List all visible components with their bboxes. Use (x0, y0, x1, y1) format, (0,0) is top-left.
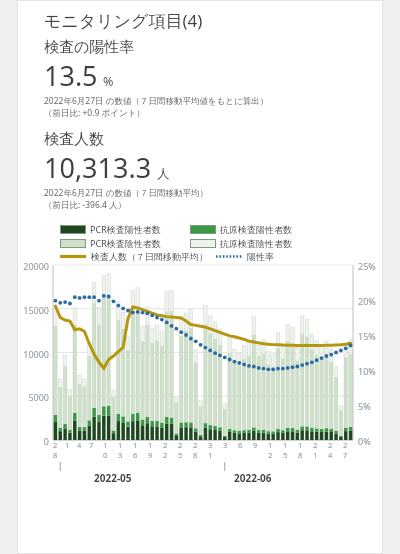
staticText: 16 (133, 440, 138, 460)
staticText: 7 (89, 440, 93, 450)
staticText: 10000 (17, 348, 49, 360)
staticText: 28 (53, 440, 57, 460)
staticText: 12 (268, 440, 273, 460)
staticText: 22 (163, 440, 168, 460)
staticText: 1 (65, 440, 69, 450)
staticText: 0 (17, 435, 49, 447)
staticText: 27 (343, 440, 348, 460)
staticText: （前日比: -396.4 人） (44, 199, 127, 211)
staticText: 抗原検査陽性者数 (220, 224, 292, 235)
staticText: 15 (283, 440, 288, 460)
staticText: 31 (208, 440, 213, 460)
staticText: 15000 (17, 304, 49, 316)
staticText: 0% (358, 435, 371, 447)
staticText: 24 (328, 440, 333, 460)
staticText: 2022-05 (94, 471, 132, 485)
staticText: 2022-06 (234, 471, 272, 485)
staticText: 25% (358, 260, 376, 272)
staticText: 4 (77, 440, 81, 450)
staticText: 陽性率 (247, 251, 274, 262)
staticText: 2022年6月27日 の数値（７日間移動平均値をもとに算出） (44, 95, 269, 107)
staticText: 5000 (17, 391, 49, 403)
staticText: 3 (223, 440, 228, 450)
staticText: 13 (118, 440, 123, 460)
button[interactable]: 検査人数と陽性率の推移グラフ (17, 265, 383, 485)
staticText: 10 (103, 440, 108, 460)
staticText: 5% (358, 400, 371, 412)
staticText: 6 (238, 440, 243, 450)
staticText: 人 (157, 166, 170, 182)
staticText: 10% (358, 365, 376, 377)
staticText: 20% (358, 295, 376, 307)
staticText: % (103, 73, 114, 90)
staticText: （前日比: +0.9 ポイント） (44, 107, 145, 119)
staticText: 28 (193, 440, 198, 460)
staticText: 18 (298, 440, 303, 460)
staticText: 21 (313, 440, 318, 460)
staticText: 20000 (17, 260, 49, 272)
staticText: PCR検査陽性者数 (90, 223, 161, 235)
staticText: モニタリング項目(4) (44, 9, 203, 32)
staticText: 15% (358, 330, 376, 342)
staticText: 2022年6月27日 の数値（７日間移動平均） (44, 187, 208, 199)
staticText: 13.5 (44, 57, 98, 94)
staticText: 抗原検査陰性者数 (220, 238, 292, 249)
staticText: 検査の陽性率 (44, 38, 135, 57)
staticText: PCR検査陰性者数 (90, 237, 161, 249)
staticText: 9 (253, 440, 258, 450)
staticText: 19 (148, 440, 153, 460)
staticText: 25 (178, 440, 183, 460)
staticText: 検査人数 (44, 130, 104, 149)
staticText: 検査人数（７日間移動平均） (91, 251, 208, 262)
staticText: 10,313.3 (44, 149, 152, 186)
